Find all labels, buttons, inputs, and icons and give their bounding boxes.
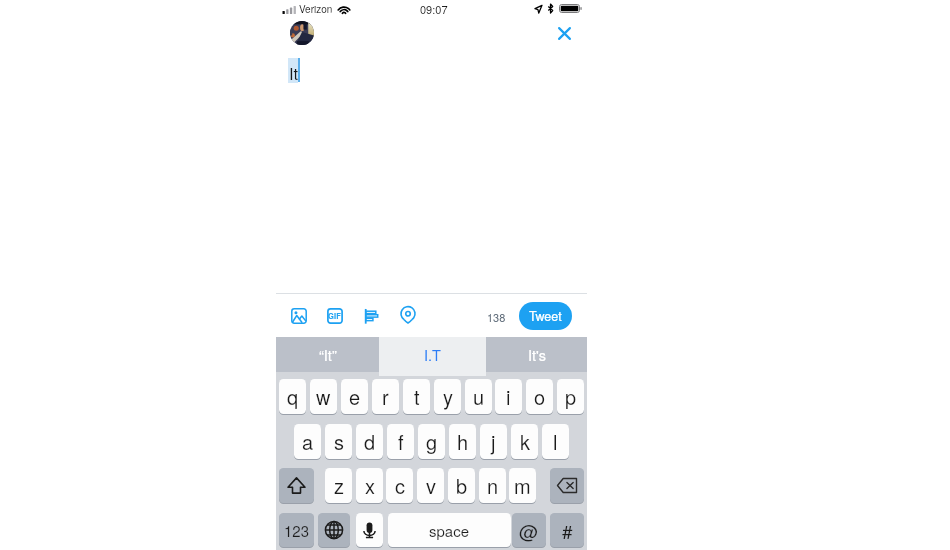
staticText: s — [334, 427, 344, 456]
button[interactable]: Dictate — [356, 513, 383, 547]
staticText: space — [429, 520, 470, 541]
button[interactable]: a — [294, 424, 321, 459]
staticText: 123 — [284, 520, 310, 541]
staticText: w — [316, 382, 331, 411]
button[interactable]: w — [310, 379, 337, 414]
button[interactable]: It's — [486, 337, 588, 372]
button[interactable]: Add location — [400, 307, 416, 323]
button[interactable]: v — [417, 468, 444, 503]
staticText: r — [382, 382, 389, 411]
button[interactable]: n — [479, 468, 506, 503]
staticText: y — [443, 382, 453, 411]
button[interactable]: y — [434, 379, 461, 414]
button[interactable]: Add GIF — [327, 308, 343, 324]
button[interactable]: z — [325, 468, 352, 503]
button[interactable]: j — [480, 424, 507, 459]
button[interactable]: q — [279, 379, 306, 414]
button[interactable]: k — [511, 424, 538, 459]
staticText: v — [426, 471, 436, 500]
staticText: # — [562, 517, 573, 544]
staticText: i — [506, 382, 511, 411]
staticText: z — [334, 471, 344, 500]
button[interactable]: h — [449, 424, 476, 459]
staticText: t — [414, 382, 420, 411]
button[interactable]: c — [386, 468, 413, 503]
staticText: c — [395, 471, 405, 500]
button[interactable]: “It” — [276, 337, 379, 372]
button[interactable]: b — [448, 468, 475, 503]
staticText: g — [426, 427, 438, 456]
button[interactable]: p — [557, 379, 584, 414]
staticText: h — [457, 427, 469, 456]
button[interactable]: Profile photo — [290, 21, 314, 45]
staticText: m — [514, 471, 531, 500]
staticText: l — [553, 427, 558, 456]
button[interactable]: Next keyboard — [318, 513, 350, 547]
staticText: j — [491, 427, 496, 456]
button[interactable]: r — [372, 379, 399, 414]
staticText: Verizon — [299, 2, 333, 16]
button[interactable]: l — [542, 424, 569, 459]
button[interactable]: d — [356, 424, 383, 459]
staticText: q — [287, 382, 299, 411]
button[interactable]: Add poll — [363, 308, 379, 324]
button[interactable]: Close — [548, 18, 580, 49]
button[interactable]: Add photo — [291, 308, 307, 324]
button[interactable]: x — [356, 468, 383, 503]
button[interactable]: # — [550, 513, 584, 547]
staticText: b — [456, 471, 468, 500]
staticText: It — [289, 61, 299, 85]
staticText: f — [398, 427, 404, 456]
staticText: Tweet — [529, 307, 562, 325]
staticText: GIF — [328, 311, 342, 322]
staticText: u — [473, 382, 485, 411]
staticText: o — [534, 382, 546, 411]
button[interactable]: f — [387, 424, 414, 459]
button[interactable]: t — [403, 379, 430, 414]
button[interactable]: I.T — [379, 337, 486, 376]
button[interactable]: Shift — [279, 468, 314, 503]
staticText: d — [364, 427, 376, 456]
staticText: “It” — [319, 344, 337, 365]
button[interactable]: Backspace — [550, 468, 584, 503]
staticText: I.T — [424, 344, 441, 365]
button[interactable]: u — [465, 379, 492, 414]
button[interactable]: s — [325, 424, 352, 459]
staticText: @ — [519, 517, 539, 544]
button[interactable]: Tweet — [519, 302, 572, 330]
staticText: a — [302, 427, 314, 456]
staticText: p — [565, 382, 577, 411]
button[interactable]: e — [341, 379, 368, 414]
staticText: e — [349, 382, 361, 411]
staticText: 09:07 — [420, 1, 448, 17]
button[interactable]: 123 — [279, 513, 314, 547]
staticText: n — [487, 471, 499, 500]
staticText: It's — [528, 344, 547, 365]
button[interactable]: o — [526, 379, 553, 414]
staticText: x — [365, 471, 375, 500]
button[interactable]: @ — [512, 513, 546, 547]
staticText: 138 — [487, 309, 506, 325]
button[interactable]: space — [388, 513, 511, 547]
button[interactable]: m — [509, 468, 536, 503]
staticText: k — [520, 427, 530, 456]
button[interactable]: g — [418, 424, 445, 459]
button[interactable]: i — [495, 379, 522, 414]
